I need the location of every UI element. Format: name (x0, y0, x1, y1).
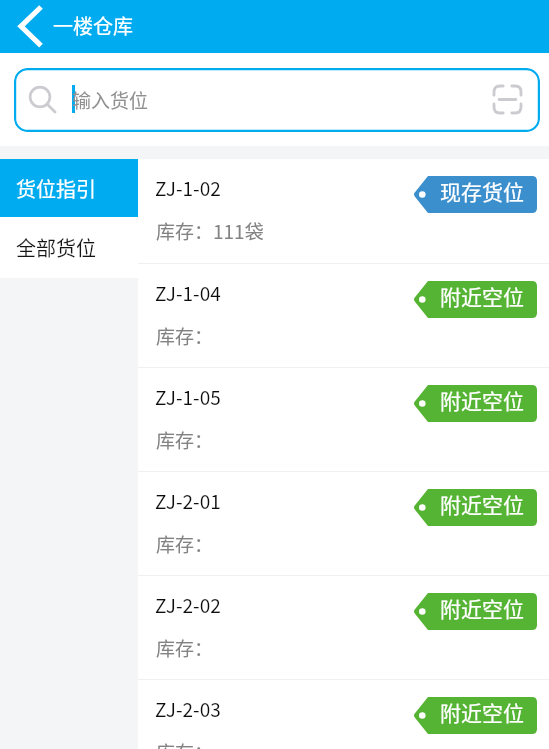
button[interactable]: Back (0, 0, 52, 53)
button[interactable]: ZJ-2-02 (138, 576, 549, 679)
button[interactable]: 输入货位 (14, 68, 540, 132)
button[interactable]: 全部货位 (0, 217, 138, 278)
button[interactable]: ZJ-1-02 (138, 159, 549, 263)
staticText: 库存： (156, 322, 214, 350)
button[interactable]: ZJ-2-01 (138, 472, 549, 575)
staticText: 库存： (156, 426, 214, 454)
staticText: 库存： (156, 634, 214, 662)
staticText: 附近空位 (440, 385, 524, 415)
staticText: ZJ-2-02 (155, 591, 221, 619)
staticText: 附近空位 (440, 489, 524, 519)
staticText: 附近空位 (440, 593, 524, 623)
staticText: ZJ-1-04 (155, 279, 221, 307)
staticText: ZJ-1-02 (155, 174, 221, 202)
staticText: 附近空位 (440, 697, 524, 727)
staticText: ZJ-1-05 (155, 383, 221, 411)
staticText: 一楼仓库 (53, 11, 133, 40)
staticText: 现存货位 (440, 176, 524, 206)
staticText: 库存： (156, 530, 214, 558)
staticText: ZJ-2-01 (155, 487, 221, 515)
staticText: 货位指引 (16, 174, 96, 203)
staticText: 输入货位 (72, 86, 149, 114)
button[interactable]: ZJ-2-03 (138, 680, 549, 749)
staticText: 附近空位 (440, 281, 524, 311)
staticText: ZJ-2-03 (155, 695, 221, 723)
button[interactable]: Scan barcode (490, 82, 524, 116)
staticText: 库存： (156, 738, 214, 749)
staticText: 库存：111袋 (156, 217, 264, 245)
staticText: 全部货位 (16, 233, 96, 262)
button[interactable]: 货位指引 (0, 159, 138, 217)
button[interactable]: ZJ-1-04 (138, 264, 549, 367)
button[interactable]: ZJ-1-05 (138, 368, 549, 471)
